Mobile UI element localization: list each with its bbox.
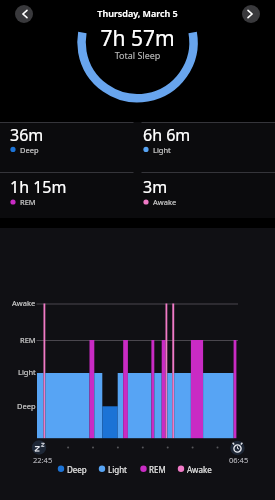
staticText: REM: [20, 335, 36, 345]
staticText: REM: [20, 197, 36, 207]
staticText: Awake: [12, 298, 36, 308]
staticText: Awake: [153, 197, 177, 207]
staticText: 6h 6m: [143, 124, 191, 146]
staticText: 3m: [143, 176, 168, 198]
staticText: 1h 15m: [10, 176, 67, 198]
button[interactable]: [15, 5, 33, 23]
staticText: Light: [108, 464, 128, 475]
button[interactable]: [242, 5, 260, 23]
staticText: Awake: [187, 464, 212, 475]
button[interactable]: 6h 6m: [143, 124, 191, 158]
staticText: Deep: [17, 401, 36, 411]
staticText: 7h 57m: [0, 24, 275, 53]
staticText: REM: [149, 464, 166, 475]
staticText: 36m: [10, 124, 44, 146]
button[interactable]: Thursday, March 5: [0, 7, 275, 19]
staticText: Total Sleep: [0, 49, 275, 61]
staticText: Deep: [67, 464, 87, 475]
staticText: Light: [18, 367, 36, 377]
staticText: Light: [153, 145, 171, 155]
button[interactable]: 1h 15m: [10, 176, 67, 210]
button[interactable]: 3m: [143, 176, 168, 210]
staticText: 22:45: [33, 455, 53, 465]
staticText: Deep: [20, 145, 39, 155]
staticText: 06:45: [229, 455, 249, 465]
button[interactable]: 36m: [10, 124, 44, 158]
